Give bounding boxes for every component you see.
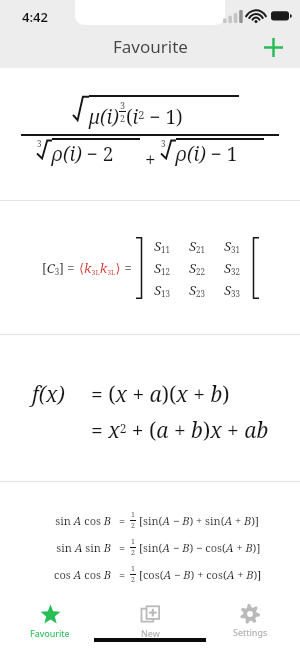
button[interactable]: Settings — [200, 598, 300, 650]
staticText: = — [119, 513, 126, 528]
staticText: S11 — [154, 237, 171, 255]
staticText: 1 — [131, 510, 135, 520]
button[interactable]: sin A cos B — [0, 482, 300, 598]
button[interactable]: f(x) — [0, 335, 300, 481]
staticText: sin A sin B — [39, 540, 111, 555]
staticText: 1 — [131, 564, 135, 574]
staticText: 3 — [161, 138, 166, 149]
staticText: cos A cos B — [39, 567, 111, 582]
staticText: Settings — [233, 626, 268, 638]
staticText: μ(i) — [89, 104, 119, 130]
staticText: S22 — [189, 259, 206, 277]
staticText: 3 — [37, 138, 42, 149]
staticText: [sin(A − B) + sin(A + B)] — [139, 513, 260, 528]
staticText: S13 — [154, 281, 171, 299]
staticText: New — [141, 627, 160, 639]
staticText: Favourite — [113, 35, 188, 58]
staticText: ⟨k3Lk3L⟩ — [79, 259, 121, 277]
staticText: 1 — [131, 537, 135, 547]
staticText: + — [140, 147, 161, 173]
staticText: = — [119, 540, 126, 555]
staticText: S31 — [224, 237, 241, 255]
staticText: S32 — [224, 259, 241, 277]
staticText: 3 — [120, 99, 126, 111]
staticText: Favourite — [30, 627, 70, 639]
button[interactable]: [C3] = — [0, 201, 300, 334]
staticText: [sin(A − B) − cos(A + B)] — [139, 540, 261, 555]
staticText: [C3] = — [42, 259, 79, 277]
button[interactable]: μ(i) — [0, 68, 300, 200]
staticText: = — [119, 567, 126, 582]
staticText: f(x) — [32, 380, 65, 409]
staticText: = — [121, 259, 136, 277]
staticText: = x2 + (a + b)x + ab — [91, 416, 269, 445]
staticText: 2 — [131, 575, 135, 585]
staticText: 4:42 — [22, 8, 48, 26]
button[interactable]: New — [100, 598, 200, 650]
staticText: 2 — [131, 521, 135, 531]
staticText: S33 — [224, 281, 241, 299]
staticText: (i2 − 1) — [126, 104, 183, 130]
button[interactable]: Favourite — [0, 598, 100, 650]
staticText: 2 — [120, 112, 126, 124]
staticText: sin A cos B — [39, 513, 111, 528]
staticText: [cos(A − B) + cos(A + B)] — [139, 567, 262, 582]
staticText: = (x + a)(x + b) — [91, 380, 230, 409]
staticText: S12 — [154, 259, 171, 277]
staticText: ρ(i) − 1 — [176, 141, 238, 167]
staticText: ρ(i) − 2 — [52, 141, 114, 167]
staticText: S23 — [189, 281, 206, 299]
staticText: S21 — [189, 237, 206, 255]
button[interactable]: Add favourite — [255, 29, 291, 65]
staticText: 2 — [131, 548, 135, 558]
